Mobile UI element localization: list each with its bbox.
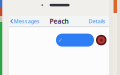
- staticText: Messages: [14, 18, 40, 25]
- button[interactable]: Details: [88, 16, 109, 27]
- staticText: Peach: [49, 17, 68, 26]
- button[interactable]: Messages: [9, 16, 40, 27]
- staticText: ✓: [58, 37, 62, 43]
- staticText: Details: [88, 18, 105, 25]
